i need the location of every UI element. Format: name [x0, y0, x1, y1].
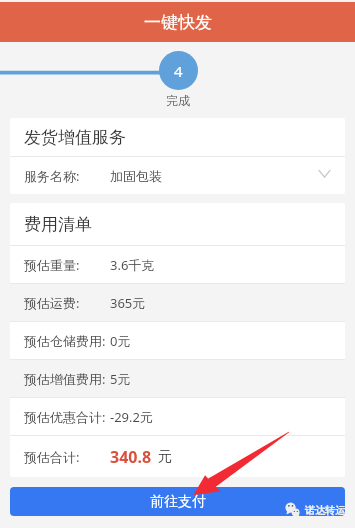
staticText: 预估优惠合计:: [24, 408, 110, 426]
staticText: 0元: [110, 332, 131, 350]
staticText: 预估增值费用:: [24, 370, 110, 388]
staticText: -29.2元: [110, 408, 153, 426]
staticText: 前往支付: [150, 493, 206, 511]
staticText: 发货增值服务: [24, 127, 126, 148]
button[interactable]: 服务名称:: [10, 157, 345, 194]
staticText: 4: [174, 61, 183, 81]
staticText: 加固包装: [110, 168, 162, 184]
staticText: 预估重量:: [24, 256, 110, 274]
button[interactable]: 预估优惠合计:: [10, 398, 345, 435]
staticText: 诺达转运: [305, 504, 345, 517]
button[interactable]: 预估重量:: [10, 246, 345, 283]
button[interactable]: 预估增值费用:: [10, 360, 345, 397]
staticText: 费用清单: [24, 214, 92, 235]
staticText: 340.8: [110, 446, 152, 468]
staticText: 365元: [110, 294, 146, 312]
staticText: 5元: [110, 370, 131, 388]
staticText: 完成: [166, 93, 190, 108]
staticText: 预估仓储费用:: [24, 332, 110, 350]
button[interactable]: 前往支付: [10, 487, 345, 516]
staticText: 3.6千克: [110, 256, 155, 274]
staticText: 预估合计:: [24, 448, 110, 466]
other: 展开服务名称: [319, 168, 330, 179]
staticText: 元: [158, 448, 172, 466]
staticText: 预估运费:: [24, 294, 110, 312]
staticText: 服务名称:: [24, 167, 110, 185]
button[interactable]: 预估仓储费用:: [10, 322, 345, 359]
button[interactable]: 预估运费:: [10, 284, 345, 321]
staticText: 一键快发: [144, 12, 212, 33]
